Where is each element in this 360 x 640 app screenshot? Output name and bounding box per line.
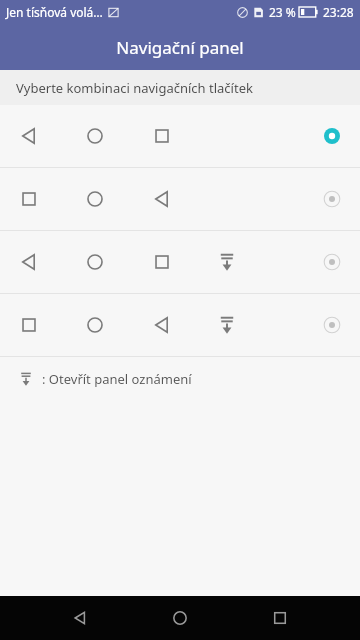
staticText: 23:28 <box>323 4 354 20</box>
button[interactable]: Back <box>30 596 130 640</box>
button[interactable]: Recent apps <box>230 596 330 640</box>
staticText: Navigační panel <box>116 36 244 59</box>
button[interactable]: Home <box>130 596 230 640</box>
staticText: Jen tísňová volá… <box>6 4 103 20</box>
staticText: 23 % <box>269 4 296 20</box>
staticText: : Otevřít panel oznámení <box>42 370 192 388</box>
button[interactable]: Navigation button combination <box>0 231 360 293</box>
button[interactable]: Navigation button combination, selected <box>0 105 360 167</box>
button[interactable]: Navigation button combination <box>0 168 360 230</box>
staticText: Vyberte kombinaci navigačních tlačítek <box>16 79 253 97</box>
button[interactable]: Navigation button combination <box>0 294 360 356</box>
